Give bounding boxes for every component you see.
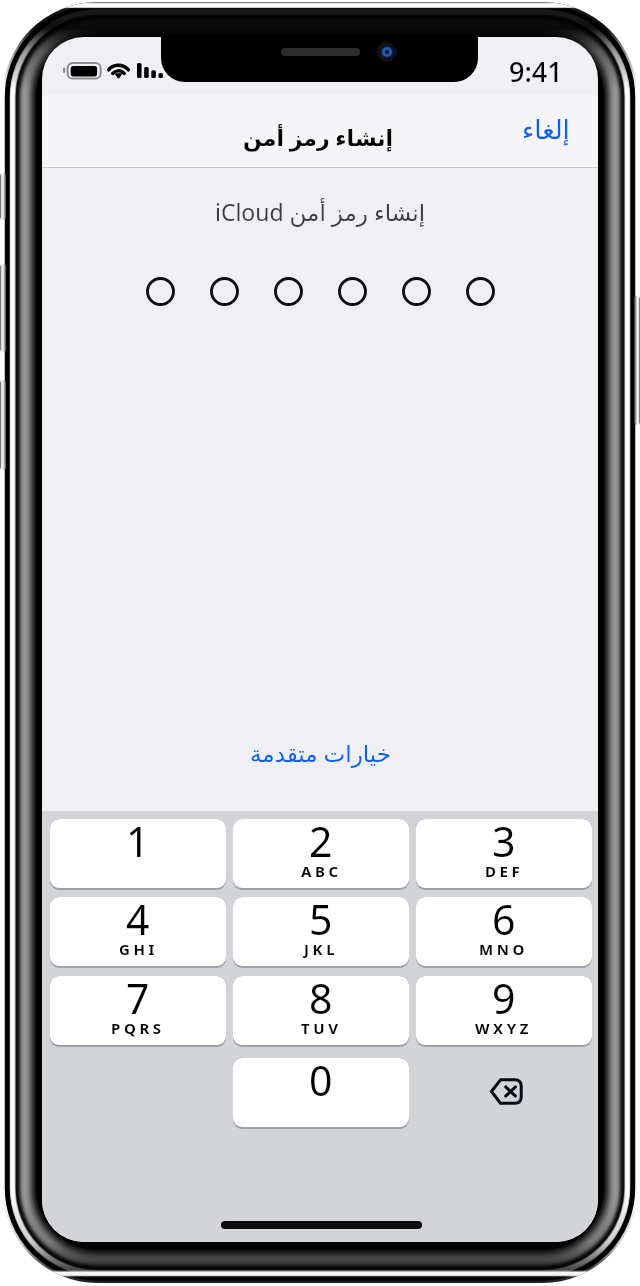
staticText: JKL [304,939,339,959]
staticText: 2 [309,819,333,869]
staticText: إنشاء رمز أمن [243,122,394,152]
staticText: 6 [492,897,516,947]
staticText: 9 [492,976,516,1026]
button[interactable]: إلغاء [522,115,570,145]
staticText: DEF [485,861,524,881]
staticText: 9:41 [509,53,563,90]
staticText: 4 [126,897,150,947]
staticText: إنشاء رمز أمن iCloud [42,196,598,227]
button[interactable]: 6 [416,897,592,966]
button[interactable]: 4 [50,897,226,966]
staticText: 1 [126,819,150,869]
staticText: MNO [479,939,529,959]
button[interactable]: 3 [416,819,592,888]
button[interactable]: 8 [233,976,409,1045]
staticText: 5 [309,897,333,947]
staticText: 3 [492,819,516,869]
staticText: 0 [309,1058,333,1108]
button[interactable]: 7 [50,976,226,1045]
button[interactable]: 1 [50,819,226,888]
button[interactable]: 9 [416,976,592,1045]
staticText: GHI [119,939,158,959]
staticText: 8 [309,976,333,1026]
button[interactable]: 2 [233,819,409,888]
staticText: WXYZ [475,1018,533,1038]
button[interactable]: خيارات متقدمة [250,737,391,768]
staticText: ABC [301,861,342,881]
staticText: PQRS [111,1018,165,1038]
button[interactable]: 0 [233,1058,409,1127]
button[interactable]: Delete [476,1061,536,1121]
staticText: 7 [126,976,150,1026]
staticText: TUV [301,1018,342,1038]
button[interactable]: 5 [233,897,409,966]
